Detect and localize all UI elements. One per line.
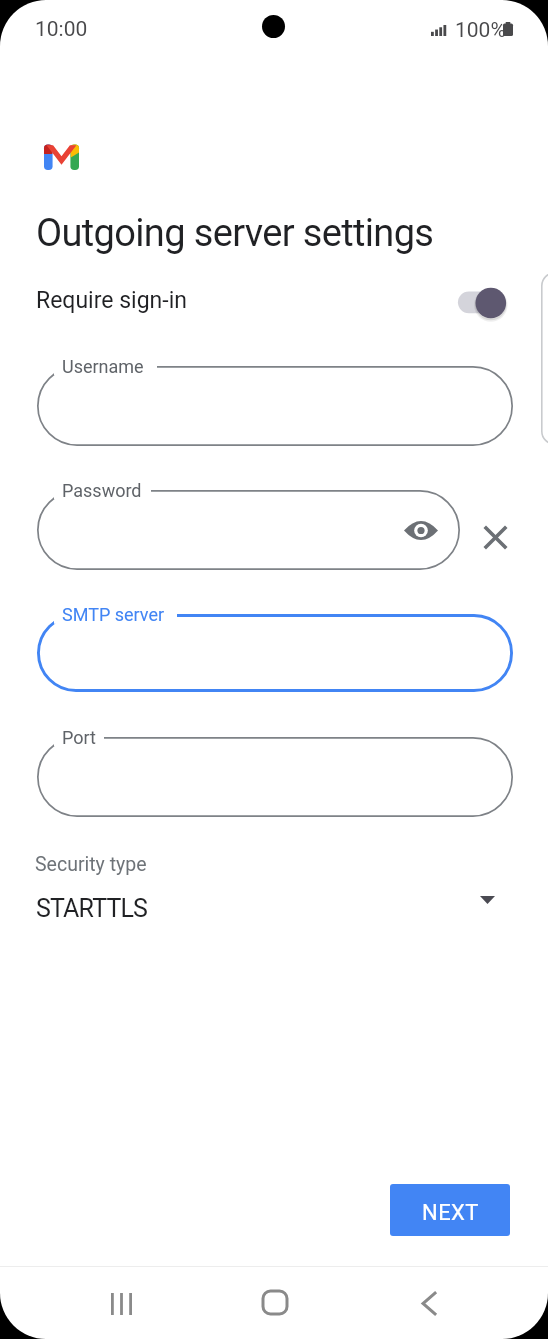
button[interactable]: Security type <box>0 845 548 931</box>
staticText: Password <box>62 480 142 501</box>
button[interactable]: Port <box>37 724 513 817</box>
button[interactable]: Password <box>37 477 460 570</box>
staticText: 100% <box>455 18 506 43</box>
button[interactable]: Username <box>37 353 513 446</box>
staticText: STARTTLS <box>36 894 148 923</box>
staticText: NEXT <box>422 1200 479 1226</box>
button[interactable]: Home <box>239 1267 311 1339</box>
staticText: Username <box>62 356 144 377</box>
button[interactable]: NEXT <box>390 1184 510 1236</box>
staticText: SMTP server <box>62 604 165 625</box>
staticText: 10:00 <box>35 17 88 42</box>
staticText: Require sign-in <box>36 287 187 314</box>
staticText: Outgoing server settings <box>36 211 434 256</box>
staticText: Security type <box>35 853 147 876</box>
button[interactable]: Require sign-in <box>0 276 548 328</box>
button[interactable]: Show password <box>399 508 443 552</box>
button[interactable]: SMTP server <box>37 601 513 692</box>
button[interactable]: Recent apps <box>85 1267 157 1339</box>
button[interactable]: Require sign-in toggle <box>455 284 511 322</box>
button[interactable]: Back <box>393 1267 465 1339</box>
button[interactable]: Clear password <box>471 514 517 560</box>
staticText: Port <box>62 727 96 748</box>
